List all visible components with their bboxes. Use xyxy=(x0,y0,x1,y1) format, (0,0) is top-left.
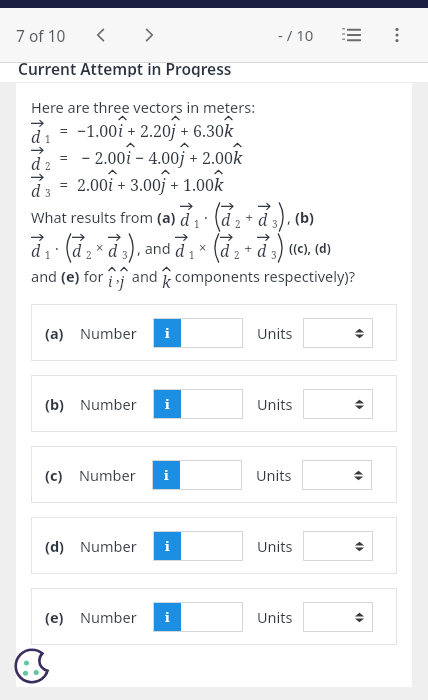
staticText: + 2.20 xyxy=(127,120,171,142)
staticText: × xyxy=(195,238,211,257)
staticText: 2 xyxy=(234,248,240,262)
staticText: d xyxy=(175,240,185,262)
staticText: d xyxy=(31,240,41,262)
staticText: 3 xyxy=(271,248,277,262)
staticText: i xyxy=(126,147,131,169)
staticText: 2 xyxy=(235,217,241,231)
button[interactable]: More options xyxy=(382,20,412,50)
staticText: and xyxy=(31,266,61,286)
staticText: - / 10 xyxy=(278,25,314,45)
staticText: + 6.30 xyxy=(180,120,224,142)
button[interactable]: Select units xyxy=(302,460,372,490)
staticText: = xyxy=(51,147,77,169)
staticText: Units xyxy=(257,394,293,414)
staticText: 3 xyxy=(122,248,128,262)
button[interactable]: Information xyxy=(153,318,181,348)
staticText: Units xyxy=(256,465,292,485)
staticText: + 3.00 xyxy=(117,174,161,196)
button[interactable]: Information xyxy=(153,531,181,561)
staticText: × xyxy=(92,238,108,257)
staticText: , and xyxy=(137,238,175,258)
button[interactable]: Select units xyxy=(303,531,373,561)
button[interactable]: (c) xyxy=(31,446,397,503)
staticText: j xyxy=(180,147,185,169)
button[interactable]: Select units xyxy=(303,318,373,348)
staticText: + 1.00 xyxy=(170,174,214,196)
staticText: Here are three vectors in meters: xyxy=(31,97,256,117)
staticText: ((c), xyxy=(286,240,315,256)
staticText: k xyxy=(224,120,234,142)
staticText: 1 xyxy=(45,248,51,262)
staticText: d xyxy=(108,240,118,262)
staticText: = xyxy=(51,120,77,142)
button[interactable]: Previous question xyxy=(86,20,116,50)
staticText: components respectively)? xyxy=(171,266,355,286)
staticText: Number xyxy=(80,536,137,556)
staticText: d xyxy=(258,209,268,231)
staticText: 2 xyxy=(86,248,92,262)
staticText: 1 xyxy=(194,217,200,231)
staticText: Number xyxy=(80,607,137,627)
staticText: i xyxy=(108,174,113,196)
staticText: d xyxy=(31,126,41,146)
staticText: 7 of 10 xyxy=(16,25,66,46)
button[interactable]: Information xyxy=(153,602,181,632)
staticText: , xyxy=(116,266,120,286)
staticText: Units xyxy=(257,536,293,556)
staticText: + xyxy=(241,207,258,227)
staticText: (d) xyxy=(45,536,64,556)
staticText: d xyxy=(31,180,41,200)
staticText: 2.00 xyxy=(77,174,108,196)
staticText: What results from xyxy=(31,207,157,227)
staticText: 1 xyxy=(45,132,51,146)
staticText: d xyxy=(257,240,267,262)
staticText: 2 xyxy=(45,159,51,173)
staticText: , xyxy=(287,207,295,227)
button[interactable]: (b) xyxy=(31,375,397,432)
staticText: = xyxy=(51,174,77,196)
button[interactable]: Information xyxy=(153,389,181,419)
staticText: (a) xyxy=(45,323,64,343)
staticText: i xyxy=(164,466,169,484)
staticText: d xyxy=(220,240,230,262)
staticText: j xyxy=(120,271,125,291)
button[interactable]: Select units xyxy=(303,389,373,419)
staticText: i xyxy=(165,395,170,413)
button[interactable]: (d) xyxy=(31,517,397,574)
staticText: + xyxy=(240,238,257,258)
staticText: for xyxy=(80,266,108,286)
staticText: − 4.00 xyxy=(135,147,180,169)
button[interactable]: Cookie preferences xyxy=(10,644,54,688)
staticText: Number xyxy=(80,394,137,414)
staticText: i xyxy=(108,271,113,291)
staticText: (c) xyxy=(45,465,63,485)
button[interactable]: Next question xyxy=(134,20,164,50)
staticText: · xyxy=(200,207,212,227)
staticText: and xyxy=(128,266,162,286)
button[interactable]: Information xyxy=(152,460,180,490)
button[interactable]: Question list xyxy=(336,20,366,50)
staticText: + 2.00 xyxy=(189,147,233,169)
staticText: (d) xyxy=(315,240,331,256)
staticText: Current Attempt in Progress xyxy=(18,58,232,77)
staticText: k xyxy=(214,174,224,196)
staticText: Number xyxy=(80,323,137,343)
staticText: (b) xyxy=(295,207,314,227)
staticText: i xyxy=(165,608,170,626)
staticText: k xyxy=(162,271,171,292)
staticText: i xyxy=(165,324,170,342)
staticText: · xyxy=(51,238,63,258)
staticText: (a) xyxy=(157,207,180,227)
staticText: Number xyxy=(79,465,136,485)
button[interactable]: Select units xyxy=(303,602,373,632)
button[interactable]: (e) xyxy=(31,588,397,645)
staticText: (e) xyxy=(61,266,80,286)
button[interactable]: (a) xyxy=(31,304,397,361)
staticText: Units xyxy=(257,323,293,343)
staticText: − 2.00 xyxy=(77,147,126,169)
staticText: 1 xyxy=(189,248,195,262)
staticText: i xyxy=(165,537,170,555)
staticText: i xyxy=(118,120,123,142)
staticText: d xyxy=(221,209,231,231)
staticText: 3 xyxy=(272,217,278,231)
